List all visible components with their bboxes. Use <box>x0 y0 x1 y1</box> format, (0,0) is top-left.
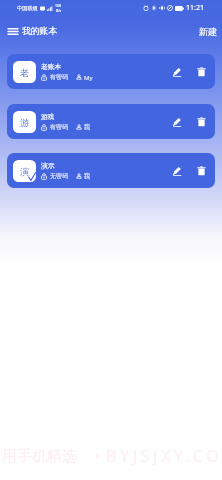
staticText: 中国联通 <box>17 5 38 12</box>
staticText: 我 <box>84 123 91 131</box>
button[interactable]: Edit <box>168 162 186 180</box>
staticText: 我的账本 <box>22 26 58 37</box>
staticText: B/s <box>56 8 62 13</box>
staticText: 用手机精选 <box>2 447 77 466</box>
staticText: 168 <box>55 3 62 8</box>
button[interactable]: Delete <box>192 162 210 180</box>
button[interactable]: 新建 <box>196 22 220 41</box>
staticText: 演 <box>20 166 29 177</box>
staticText: 游戏 <box>41 112 55 121</box>
button[interactable]: Delete <box>192 63 210 81</box>
button[interactable]: Edit <box>168 113 186 131</box>
staticText: 老账本 <box>41 62 62 71</box>
staticText: 老 <box>20 67 29 78</box>
button[interactable]: Edit <box>168 63 186 81</box>
button[interactable]: 老 <box>7 54 215 89</box>
staticText: 演示 <box>41 161 55 170</box>
button[interactable]: Delete <box>192 113 210 131</box>
staticText: BYJSJXY.CO <box>106 445 222 467</box>
button[interactable]: 游 <box>7 104 215 139</box>
staticText: 有密码 <box>50 123 69 131</box>
staticText: 11:21 <box>186 3 204 13</box>
button[interactable]: Menu <box>6 24 20 38</box>
staticText: 我 <box>84 172 91 180</box>
staticText: 游 <box>20 117 29 128</box>
staticText: 有密码 <box>50 73 69 81</box>
button[interactable]: 演 <box>7 153 215 188</box>
staticText: 新建 <box>199 26 217 37</box>
staticText: 无密码 <box>50 172 69 180</box>
staticText: My <box>84 73 93 81</box>
